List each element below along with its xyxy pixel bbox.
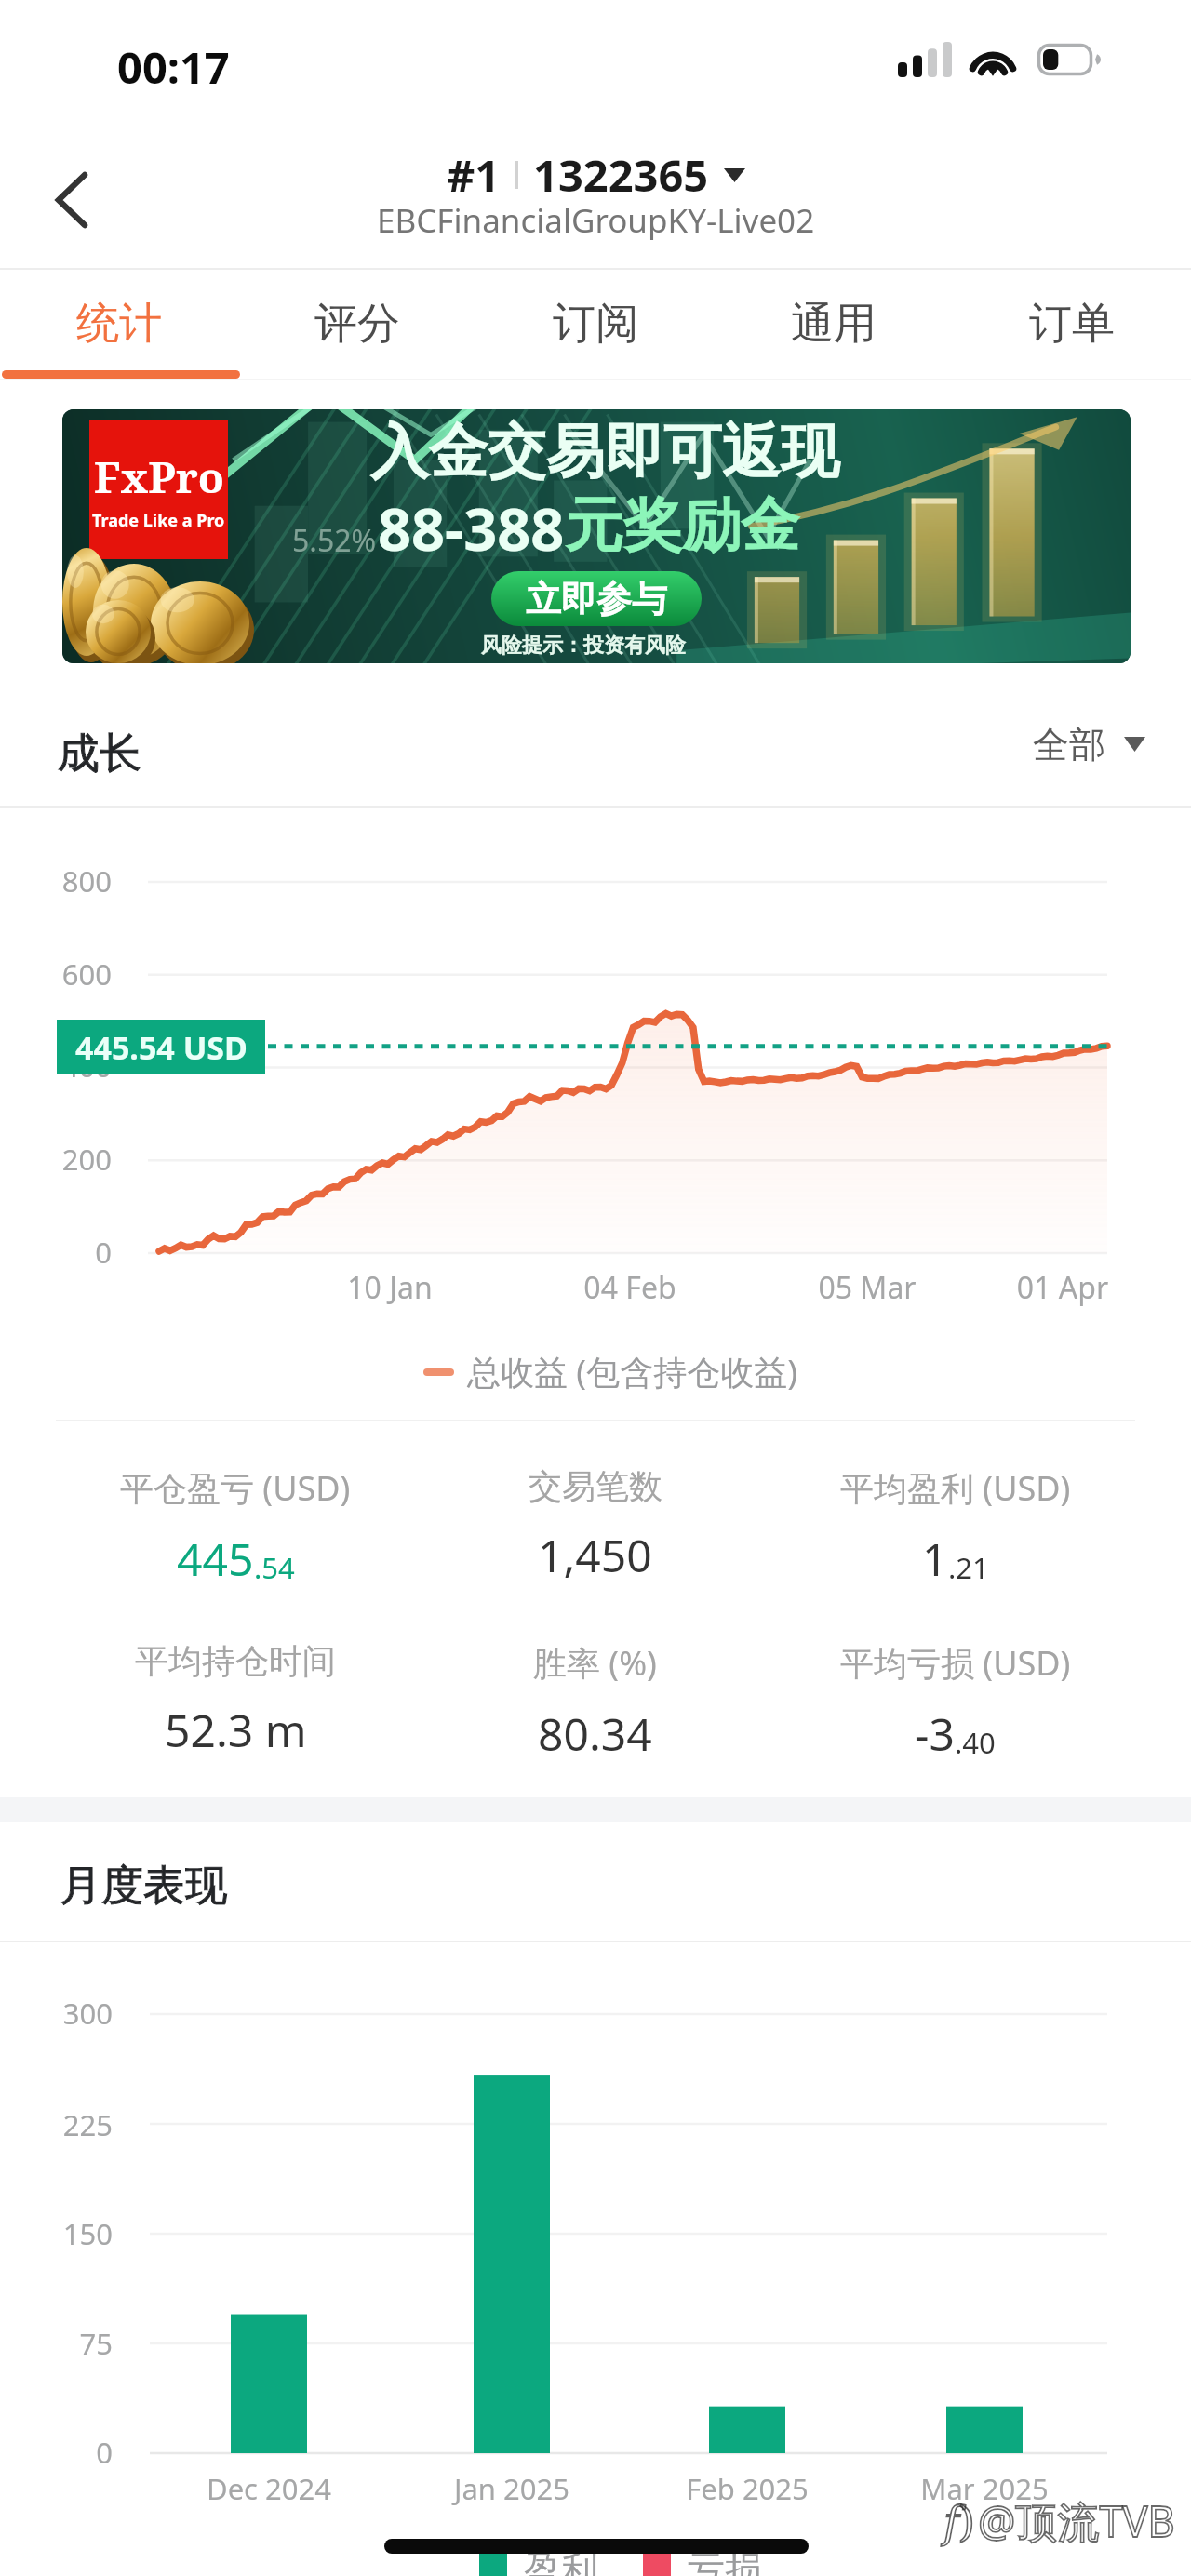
staticText: 订阅	[553, 297, 638, 351]
button[interactable]: 全部	[1022, 716, 1145, 772]
staticText: 200	[19, 1140, 112, 1179]
staticText: 01 Apr	[970, 1267, 1156, 1308]
staticText: .40	[955, 1723, 996, 1762]
staticText: 𝑓)	[943, 2491, 974, 2550]
staticText: 1,450	[538, 1525, 652, 1585]
staticText: 月度表现	[60, 1860, 227, 1913]
staticText: Mar 2025	[873, 2469, 1096, 2508]
staticText: .21	[948, 1548, 989, 1587]
staticText: -3	[915, 1703, 955, 1764]
staticText: 10 Jan	[297, 1267, 483, 1308]
button[interactable]: 立即参与	[491, 571, 702, 626]
staticText: 0	[19, 1233, 112, 1272]
staticText: EBCFinancialGroupKY-Live02	[377, 198, 815, 243]
staticText: 400	[19, 1047, 112, 1086]
staticText: 通用	[791, 297, 877, 351]
staticText: 1	[922, 1528, 948, 1589]
staticText: Jan 2025	[400, 2469, 623, 2508]
staticText: 88-388	[378, 488, 565, 568]
staticText: 平均盈利 (USD)	[840, 1465, 1071, 1511]
staticText: 元奖励金	[565, 488, 799, 562]
staticText: 全部	[1033, 722, 1105, 767]
staticText: 平仓盈亏 (USD)	[120, 1465, 351, 1511]
staticText: 445.54 USD	[75, 1026, 248, 1069]
staticText: 平均持仓时间	[135, 1640, 336, 1682]
staticText: 00:17	[117, 37, 230, 97]
staticText: 总收益 (包含持仓收益)	[467, 1349, 797, 1395]
staticText: 04 Feb	[537, 1267, 723, 1308]
staticText: 80.34	[538, 1703, 652, 1764]
button[interactable]: 评分	[238, 270, 476, 378]
staticText: 0	[20, 2433, 113, 2472]
button[interactable]: Switch account 1322365	[0, 145, 1191, 249]
staticText: 225	[20, 2105, 113, 2144]
staticText: 800	[19, 861, 112, 901]
staticText: 交易笔数	[529, 1465, 662, 1507]
button[interactable]: Back	[16, 149, 127, 251]
staticText: 1322365	[533, 145, 709, 205]
staticText: Dec 2024	[157, 2469, 381, 2508]
staticText: 05 Mar	[774, 1267, 960, 1308]
staticText: Feb 2025	[636, 2469, 859, 2508]
button[interactable]: 订阅	[476, 270, 715, 378]
staticText: FxPro	[94, 447, 224, 506]
staticText: 月度表现	[60, 1860, 227, 1913]
staticText: .54	[254, 1548, 295, 1587]
button[interactable]: 订单	[953, 270, 1191, 378]
staticText: 平均亏损 (USD)	[840, 1640, 1071, 1686]
staticText: 52.3 m	[165, 1700, 307, 1760]
staticText: 445	[177, 1528, 254, 1589]
staticText: 胜率 (%)	[533, 1640, 657, 1686]
staticText: 盈利	[524, 2546, 598, 2576]
staticText: 评分	[314, 297, 400, 351]
staticText: Trade Like a Pro	[92, 509, 225, 532]
staticText: 亏损	[688, 2546, 762, 2576]
staticText: 入金交易即可返现	[370, 415, 839, 488]
staticText: 600	[19, 954, 112, 994]
staticText: 风险提示：投资有风险	[481, 633, 686, 659]
staticText: 150	[20, 2214, 113, 2253]
staticText: 订单	[1029, 297, 1115, 351]
staticText: 5.52%	[292, 520, 377, 561]
button[interactable]: 统计	[0, 270, 238, 378]
button[interactable]: 通用	[715, 270, 953, 378]
staticText: 立即参与	[526, 577, 667, 621]
staticText: 300	[20, 1994, 113, 2033]
button[interactable]: FxPro	[62, 409, 1131, 663]
staticText: #1	[447, 145, 501, 205]
staticText: 统计	[76, 297, 162, 351]
staticText: @顶流TVB	[978, 2492, 1175, 2549]
staticText: 成长	[58, 727, 141, 781]
staticText: 成长	[58, 727, 141, 781]
staticText: 75	[20, 2324, 113, 2363]
